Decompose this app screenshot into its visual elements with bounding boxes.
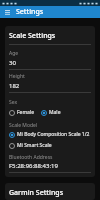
- button[interactable]: Female: [9, 108, 35, 117]
- button[interactable]: Male: [41, 108, 61, 117]
- staticText: Mi Body Composition Scale 1/2: [17, 131, 90, 138]
- staticText: 30: [9, 59, 16, 67]
- staticText: Female: [17, 109, 35, 116]
- staticText: Height: [9, 73, 25, 80]
- staticText: Scale Model: [9, 122, 38, 129]
- button[interactable]: Open navigation menu: [3, 8, 12, 17]
- staticText: Garmin Settings: [9, 188, 64, 198]
- staticText: Settings: [16, 7, 44, 17]
- staticText: Sex: [9, 99, 18, 106]
- button[interactable]: F5:28:96:88:43:19: [5, 162, 95, 170]
- staticText: 182: [9, 82, 20, 90]
- staticText: Mi Smart Scale: [17, 142, 52, 149]
- staticText: Bluetooth Address: [9, 154, 53, 161]
- button[interactable]: Height: [5, 73, 95, 96]
- button[interactable]: Age: [5, 50, 95, 73]
- staticText: F5:28:96:88:43:19: [9, 162, 58, 170]
- staticText: Scale Settings: [9, 31, 56, 41]
- staticText: Age: [9, 50, 19, 57]
- button[interactable]: Mi Smart Scale: [9, 141, 52, 150]
- button[interactable]: Mi Body Composition Scale 1/2: [9, 130, 90, 139]
- staticText: Male: [49, 109, 61, 116]
- button[interactable]: Scale Settings: [5, 30, 95, 42]
- button[interactable]: Garmin Settings: [5, 187, 95, 199]
